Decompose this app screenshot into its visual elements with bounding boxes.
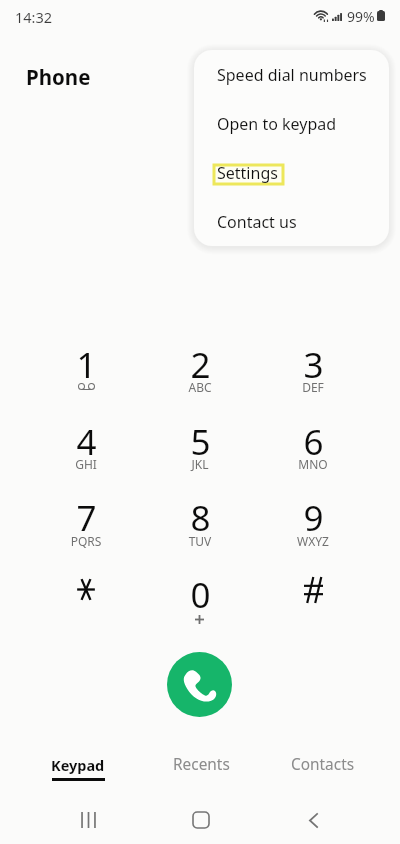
staticText: 99% xyxy=(347,7,375,26)
staticText: Phone xyxy=(26,63,91,91)
button[interactable]: 4 xyxy=(38,415,134,481)
staticText: 5 xyxy=(190,418,211,466)
staticText: JKL xyxy=(160,456,240,472)
button[interactable]: Back xyxy=(285,800,341,840)
staticText: GHI xyxy=(46,456,126,472)
staticText: ABC xyxy=(160,379,240,395)
button[interactable]: Recents xyxy=(143,748,259,794)
button[interactable]: 9 xyxy=(265,491,361,557)
staticText: MNO xyxy=(273,456,353,472)
button[interactable]: 2 xyxy=(152,338,248,404)
staticText: 8 xyxy=(190,494,211,542)
button[interactable]: Keypad xyxy=(20,748,136,794)
staticText: Contacts xyxy=(291,754,355,775)
staticText: PQRS xyxy=(46,533,126,549)
staticText: Open to keypad xyxy=(217,113,337,135)
button[interactable]: Home xyxy=(173,800,229,840)
staticText: 3 xyxy=(303,341,324,389)
staticText: Contact us xyxy=(217,211,297,233)
staticText: 4 xyxy=(76,418,97,466)
staticText: 14:32 xyxy=(15,7,53,27)
button[interactable] xyxy=(265,568,361,634)
staticText: 1 xyxy=(76,341,97,389)
staticText: Speed dial numbers xyxy=(217,64,367,86)
staticText: 6 xyxy=(303,418,324,466)
staticText: 7 xyxy=(76,494,97,542)
button[interactable]: 3 xyxy=(265,338,361,404)
button[interactable]: Settings xyxy=(194,148,389,197)
button[interactable]: 5 xyxy=(152,415,248,481)
staticText: WXYZ xyxy=(273,533,353,549)
button[interactable]: Speed dial numbers xyxy=(194,50,389,99)
button[interactable]: 0 xyxy=(152,568,248,634)
button[interactable] xyxy=(38,568,134,634)
button[interactable]: Contact us xyxy=(194,197,389,246)
staticText: 9 xyxy=(303,494,324,542)
button[interactable]: Call xyxy=(167,652,232,717)
staticText: Settings xyxy=(217,162,278,184)
button[interactable]: Recent apps xyxy=(60,800,116,840)
staticText: 2 xyxy=(190,341,211,389)
button[interactable]: 7 xyxy=(38,491,134,557)
button[interactable]: 6 xyxy=(265,415,361,481)
staticText: 0 xyxy=(190,571,211,619)
staticText: DEF xyxy=(273,379,353,395)
button[interactable]: 8 xyxy=(152,491,248,557)
button[interactable]: Contacts xyxy=(265,748,381,794)
button[interactable]: 1 xyxy=(38,338,134,404)
button[interactable]: Open to keypad xyxy=(194,99,389,148)
staticText: Recents xyxy=(173,754,230,775)
staticText: TUV xyxy=(160,533,240,549)
staticText: Keypad xyxy=(51,755,105,775)
